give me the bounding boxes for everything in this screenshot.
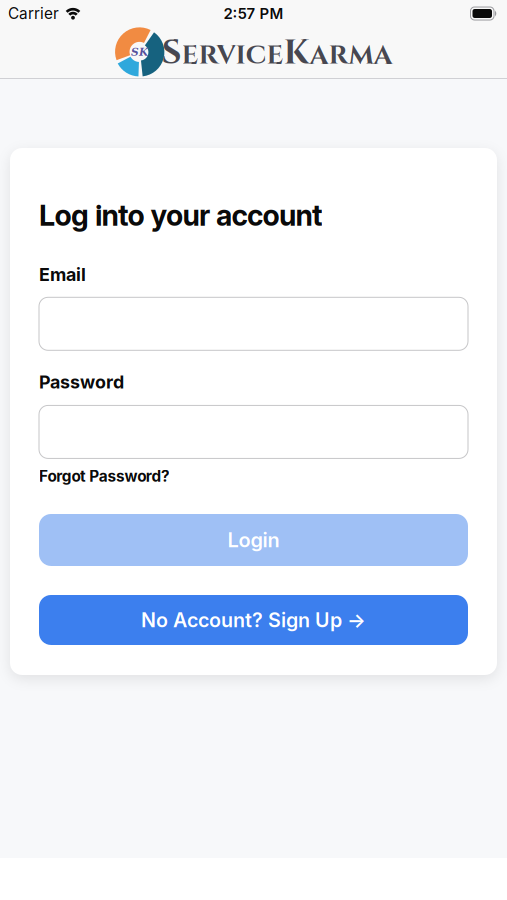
staticText: No Account? Sign Up →: [141, 608, 366, 632]
staticText: Login: [227, 528, 279, 552]
staticText: 2:57 PM: [223, 4, 283, 23]
staticText: Forgot Password?: [39, 467, 170, 485]
staticText: Email: [39, 264, 86, 285]
staticText: K: [283, 30, 309, 76]
button[interactable]: No Account? Sign Up →: [39, 595, 468, 645]
staticText: S: [161, 30, 181, 76]
staticText: Password: [39, 371, 124, 393]
staticText: ARMA: [309, 37, 392, 73]
staticText: SK: [131, 46, 148, 58]
staticText: ERVICE: [181, 37, 283, 73]
button[interactable]: Login: [39, 514, 468, 566]
staticText: Carrier: [8, 4, 59, 23]
button[interactable]: Forgot Password?: [39, 467, 170, 485]
staticText: Log into your account: [39, 198, 323, 233]
